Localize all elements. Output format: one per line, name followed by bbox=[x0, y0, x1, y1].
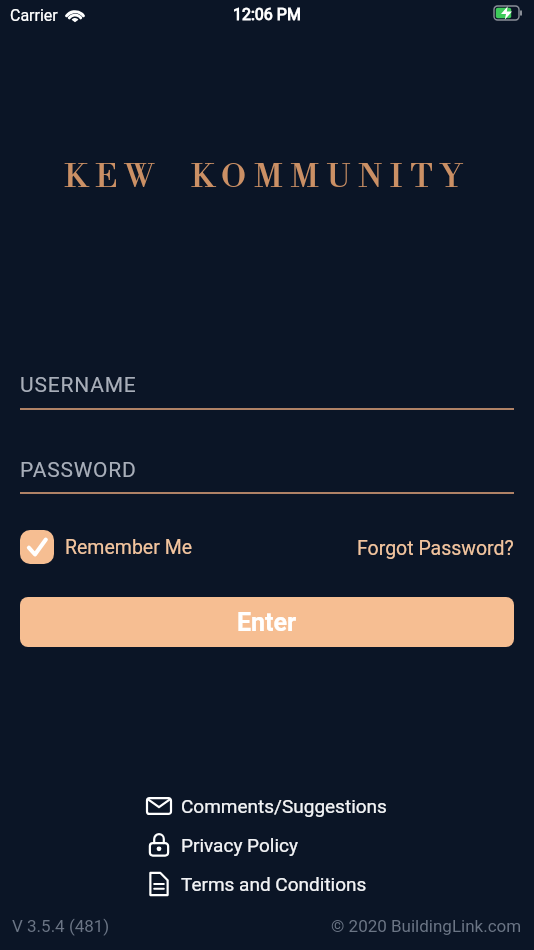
staticText: PASSWORD bbox=[20, 458, 137, 483]
button[interactable]: Privacy Policy bbox=[147, 833, 298, 857]
staticText: Terms and Conditions bbox=[181, 873, 367, 895]
staticText: KEW KOMMUNITY bbox=[0, 157, 534, 197]
button[interactable]: USERNAME bbox=[20, 373, 514, 413]
staticText: Remember Me bbox=[65, 536, 192, 559]
button[interactable]: Terms and Conditions bbox=[147, 872, 367, 896]
button[interactable]: PASSWORD bbox=[20, 458, 514, 498]
staticText: USERNAME bbox=[20, 373, 137, 398]
staticText: 12:06 PM bbox=[233, 5, 301, 24]
button[interactable]: Remember Me bbox=[20, 530, 192, 564]
staticText: Carrier bbox=[10, 6, 58, 25]
staticText: Forgot Password? bbox=[357, 537, 514, 560]
button[interactable]: Enter bbox=[20, 597, 514, 647]
staticText: Comments/Suggestions bbox=[181, 795, 387, 817]
button[interactable]: Comments/Suggestions bbox=[147, 794, 387, 818]
button[interactable]: Forgot Password? bbox=[280, 533, 514, 563]
staticText: V 3.5.4 (481) bbox=[12, 916, 110, 936]
staticText: Privacy Policy bbox=[181, 834, 298, 856]
staticText: © 2020 BuildingLink.com bbox=[331, 916, 522, 936]
staticText: Enter bbox=[237, 608, 297, 637]
